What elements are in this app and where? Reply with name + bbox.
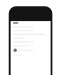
button[interactable]: Account row — [7, 33, 35, 37]
